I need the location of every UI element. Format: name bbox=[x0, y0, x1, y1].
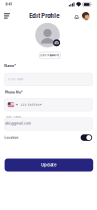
staticText: Edit Profile bbox=[29, 13, 59, 19]
staticText: Edit Password bbox=[40, 54, 59, 57]
staticText: Name* bbox=[4, 64, 16, 68]
button[interactable]: Update bbox=[5, 158, 93, 171]
staticText: 222 5655004 bbox=[21, 103, 42, 106]
staticText: Phone No* bbox=[5, 90, 23, 94]
button[interactable]: Notifications bbox=[71, 11, 82, 22]
staticText: Email Address bbox=[6, 115, 21, 118]
button[interactable]: Menu bbox=[4, 9, 17, 22]
button[interactable]: Profile photo bbox=[82, 12, 90, 20]
button[interactable]: Location bbox=[81, 134, 92, 141]
staticText: Enter Name bbox=[8, 78, 24, 81]
button[interactable]: Change photo bbox=[53, 39, 60, 46]
button[interactable]: Edit Password bbox=[39, 52, 61, 59]
staticText: Update bbox=[41, 162, 57, 168]
staticText: abc@gmail.com bbox=[5, 121, 31, 125]
staticText: Location bbox=[4, 136, 18, 139]
staticText: 9:41 bbox=[5, 3, 11, 6]
